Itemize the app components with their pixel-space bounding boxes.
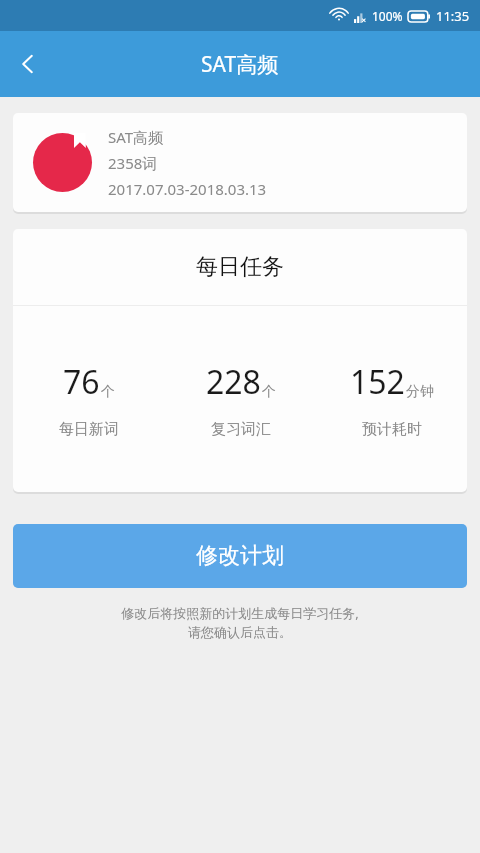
staticText: 100% (372, 8, 403, 24)
staticText: 76 (63, 360, 100, 404)
staticText: SAT高频 (201, 50, 279, 79)
button[interactable]: 152 (316, 360, 467, 439)
staticText: 复习词汇 (211, 420, 271, 439)
staticText: 个 (101, 383, 115, 401)
staticText: 2017.07.03-2018.03.13 (108, 179, 267, 199)
staticText: 修改后将按照新的计划生成每日学习任务, 请您确认后点击。 (0, 604, 480, 641)
staticText: SAT高频 (108, 127, 164, 147)
staticText: 152 (350, 360, 405, 404)
staticText: 分钟 (406, 383, 434, 401)
button[interactable]: 76 (13, 360, 165, 439)
staticText: 228 (206, 360, 261, 404)
button[interactable]: Back (0, 36, 56, 92)
staticText: 每日任务 (196, 253, 284, 281)
staticText: 个 (262, 383, 276, 401)
staticText: 11:35 (436, 7, 470, 25)
button[interactable]: SAT高频 (13, 113, 467, 214)
button[interactable]: 修改计划 (13, 524, 467, 588)
staticText: 2358词 (108, 153, 158, 173)
staticText: 预计耗时 (362, 420, 422, 439)
staticText: 修改计划 (196, 542, 284, 570)
staticText: 每日新词 (59, 420, 119, 439)
button[interactable]: 228 (165, 360, 316, 439)
